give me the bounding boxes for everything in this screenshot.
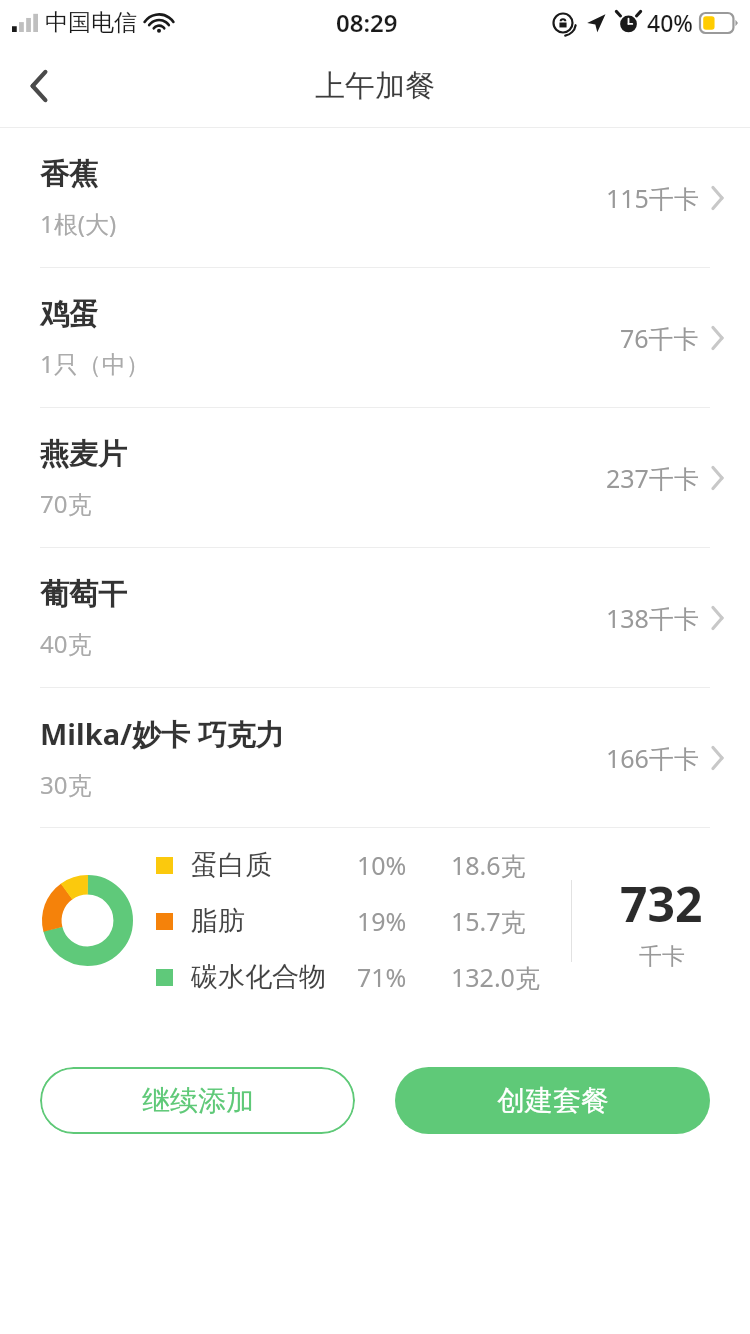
- staticText: 香蕉: [40, 156, 98, 193]
- staticText: 上午加餐: [315, 67, 435, 105]
- staticText: 蛋白质: [191, 848, 272, 882]
- staticText: 碳水化合物: [191, 960, 326, 994]
- staticText: 葡萄干: [40, 576, 127, 613]
- staticText: 10%: [357, 848, 407, 882]
- staticText: 1只（中）: [40, 347, 150, 380]
- button[interactable]: 创建套餐: [395, 1067, 710, 1134]
- staticText: 71%: [357, 960, 407, 994]
- staticText: 继续添加: [142, 1083, 254, 1118]
- staticText: 138千卡: [606, 601, 699, 635]
- staticText: 70克: [40, 487, 92, 520]
- staticText: 创建套餐: [497, 1083, 609, 1118]
- staticText: 鸡蛋: [40, 296, 98, 333]
- staticText: 15.7克: [451, 904, 526, 938]
- staticText: 燕麦片: [40, 436, 127, 473]
- button[interactable]: 返回: [0, 44, 78, 127]
- staticText: 40克: [40, 627, 92, 660]
- staticText: 18.6克: [451, 848, 526, 882]
- staticText: 19%: [357, 904, 407, 938]
- staticText: 30克: [40, 768, 92, 801]
- button[interactable]: 葡萄干: [0, 548, 750, 687]
- button[interactable]: 香蕉: [0, 128, 750, 267]
- staticText: 08:29: [336, 6, 398, 39]
- staticText: 115千卡: [606, 181, 699, 215]
- button[interactable]: 继续添加: [40, 1067, 355, 1134]
- staticText: 732: [620, 871, 703, 936]
- staticText: 237千卡: [606, 461, 699, 495]
- staticText: 千卡: [639, 942, 685, 971]
- staticText: 166千卡: [606, 741, 699, 775]
- staticText: 中国电信: [45, 8, 137, 37]
- button[interactable]: Milka/妙卡 巧克力: [0, 688, 750, 827]
- staticText: Milka/妙卡 巧克力: [40, 714, 285, 754]
- button[interactable]: 燕麦片: [0, 408, 750, 547]
- staticText: 132.0克: [451, 960, 540, 994]
- button[interactable]: 鸡蛋: [0, 268, 750, 407]
- staticText: 1根(大): [40, 207, 117, 240]
- staticText: 76千卡: [620, 321, 699, 355]
- staticText: 脂肪: [191, 904, 245, 938]
- staticText: 40%: [647, 7, 693, 38]
